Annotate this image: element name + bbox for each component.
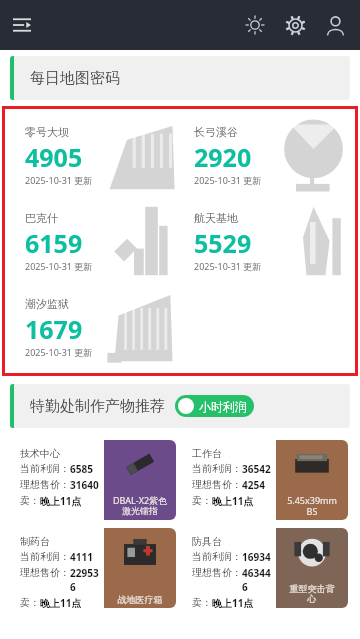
button[interactable]: 防具台 (184, 528, 348, 608)
button[interactable]: Menu (4, 7, 40, 43)
button[interactable]: 巴克什 (15, 203, 176, 279)
staticText: 4905 (25, 140, 83, 174)
staticText: 6585 (70, 462, 93, 476)
staticText: 战地医疗箱 (106, 594, 174, 605)
staticText: 4254 (242, 478, 265, 492)
staticText: 4111 (70, 550, 93, 564)
staticText: 理想售价： (192, 478, 242, 491)
staticText: 31640 (70, 478, 99, 492)
staticText: 1679 (25, 312, 83, 346)
staticText: 工作台 (192, 447, 222, 460)
staticText: 6159 (25, 226, 83, 260)
button[interactable]: 技术中心 (12, 440, 176, 520)
staticText: 长弓溪谷 (194, 125, 238, 139)
staticText: 当前利润： (20, 550, 70, 563)
staticText: 防具台 (192, 535, 222, 548)
staticText: 潮汐监狱 (25, 297, 69, 311)
staticText: 36542 (242, 462, 271, 476)
staticText: 晚上11点 (40, 494, 82, 508)
button[interactable]: 小时利润 (175, 395, 254, 417)
staticText: 特勤处制作产物推荐 (30, 397, 165, 416)
staticText: 小时利润 (199, 399, 247, 414)
staticText: 463446 (242, 566, 276, 594)
staticText: 晚上11点 (212, 494, 254, 508)
staticText: 晚上11点 (212, 596, 254, 608)
button[interactable]: 工作台 (184, 440, 348, 520)
staticText: 2025-10-31 更新 (194, 260, 262, 272)
staticText: 巴克什 (25, 211, 58, 225)
staticText: 5529 (194, 226, 252, 260)
staticText: 卖： (192, 494, 212, 507)
staticText: 当前利润： (20, 462, 70, 475)
button[interactable]: 航天基地 (184, 203, 345, 279)
staticText: 当前利润： (192, 462, 242, 475)
staticText: DBAL-X2紫色 激光镭指 (106, 494, 174, 517)
staticText: 卖： (192, 596, 212, 608)
staticText: 制药台 (20, 535, 50, 548)
button[interactable]: Settings (278, 8, 312, 42)
staticText: 2025-10-31 更新 (25, 346, 93, 358)
staticText: 5.45x39mm BS (278, 494, 346, 517)
button[interactable]: Account (318, 8, 352, 42)
button[interactable]: 零号大坝 (15, 117, 176, 193)
staticText: 2025-10-31 更新 (25, 174, 93, 186)
staticText: 229536 (70, 566, 104, 594)
staticText: 2920 (194, 140, 252, 174)
button[interactable]: 制药台 (12, 528, 176, 608)
staticText: 重型突击背 心 (278, 583, 346, 605)
staticText: 理想售价： (20, 478, 70, 491)
button[interactable]: 长弓溪谷 (184, 117, 345, 193)
staticText: 技术中心 (20, 447, 60, 460)
button[interactable]: Brightness (238, 8, 272, 42)
button[interactable]: 潮汐监狱 (15, 289, 176, 365)
staticText: 2025-10-31 更新 (25, 260, 93, 272)
button[interactable]: 每日地图密码 (10, 56, 350, 100)
staticText: 当前利润： (192, 550, 242, 563)
button[interactable]: 特勤处制作产物推荐 (10, 384, 350, 428)
staticText: 理想售价： (192, 566, 242, 579)
staticText: 航天基地 (194, 211, 238, 225)
staticText: 2025-10-31 更新 (194, 174, 262, 186)
staticText: 16934 (242, 550, 271, 564)
staticText: 零号大坝 (25, 125, 69, 139)
staticText: 每日地图密码 (30, 69, 120, 88)
staticText: 卖： (20, 494, 40, 507)
staticText: 晚上11点 (40, 596, 82, 608)
staticText: 卖： (20, 596, 40, 608)
staticText: 理想售价： (20, 566, 70, 579)
